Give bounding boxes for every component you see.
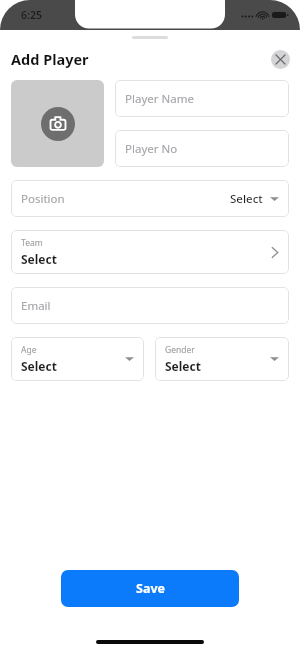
staticText: 6:25 — [21, 8, 42, 22]
button[interactable]: Player Name — [115, 80, 289, 117]
staticText: Select — [21, 358, 57, 374]
button[interactable]: Add player photo — [11, 80, 104, 167]
staticText: Gender — [165, 344, 195, 356]
staticText: Age — [21, 344, 37, 356]
button[interactable]: Close — [271, 50, 290, 69]
staticText: Player No — [125, 141, 178, 157]
staticText: Position — [21, 191, 65, 207]
button[interactable]: Team — [11, 230, 289, 274]
button[interactable]: Email — [11, 287, 289, 324]
staticText: Player Name — [125, 91, 194, 107]
button[interactable]: Gender — [155, 337, 289, 381]
button[interactable]: Position — [11, 180, 289, 217]
staticText: Select — [230, 191, 263, 207]
button[interactable]: Player No — [115, 130, 289, 167]
staticText: Email — [21, 298, 51, 314]
staticText: Select — [21, 251, 57, 267]
staticText: Select — [165, 358, 201, 374]
staticText: Team — [21, 237, 43, 249]
button[interactable]: Save — [61, 570, 239, 607]
staticText: Save — [136, 580, 165, 597]
button[interactable]: Age — [11, 337, 144, 381]
staticText: Add Player — [11, 49, 89, 69]
